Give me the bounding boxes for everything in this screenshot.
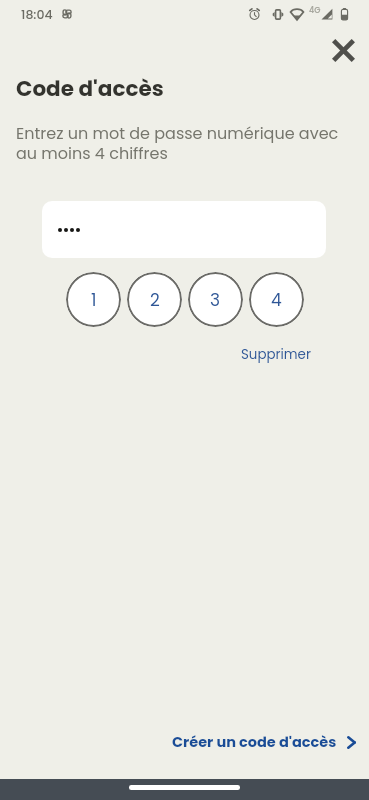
button[interactable]: 3 bbox=[188, 272, 243, 327]
staticText: Entrez un mot de passe numérique avec au… bbox=[16, 122, 348, 165]
button[interactable]: 2 bbox=[127, 272, 182, 327]
button[interactable] bbox=[42, 201, 326, 258]
button[interactable]: Fermer bbox=[327, 34, 360, 67]
button[interactable]: 1 bbox=[66, 272, 121, 327]
staticText: Créer un code d'accès bbox=[172, 732, 337, 752]
button[interactable]: 4 bbox=[249, 272, 304, 327]
staticText: Code d'accès bbox=[16, 73, 164, 103]
staticText: 2 bbox=[150, 288, 160, 312]
staticText: 4 bbox=[271, 288, 282, 312]
staticText: 4G bbox=[309, 5, 321, 16]
staticText: 3 bbox=[210, 288, 221, 312]
staticText: 18:04 bbox=[21, 6, 53, 23]
staticText: 1 bbox=[91, 288, 97, 312]
button[interactable]: Créer un code d'accès bbox=[169, 729, 359, 755]
staticText: Supprimer bbox=[241, 345, 311, 364]
button[interactable]: Supprimer bbox=[238, 343, 314, 366]
